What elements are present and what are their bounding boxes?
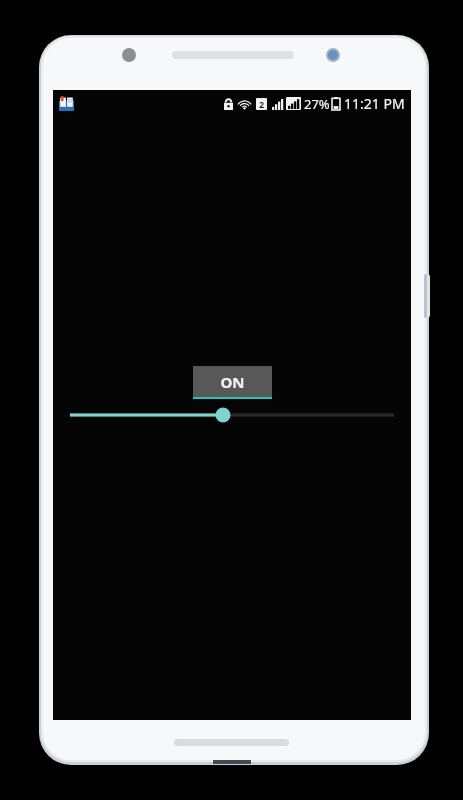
staticText: 2 (259, 98, 265, 110)
button[interactable]: ON (193, 366, 272, 399)
staticText: 11:21 PM (344, 94, 405, 113)
staticText: 27% (304, 95, 330, 113)
button[interactable]: Brightness slider (63, 402, 401, 428)
staticText: ON (220, 372, 245, 392)
